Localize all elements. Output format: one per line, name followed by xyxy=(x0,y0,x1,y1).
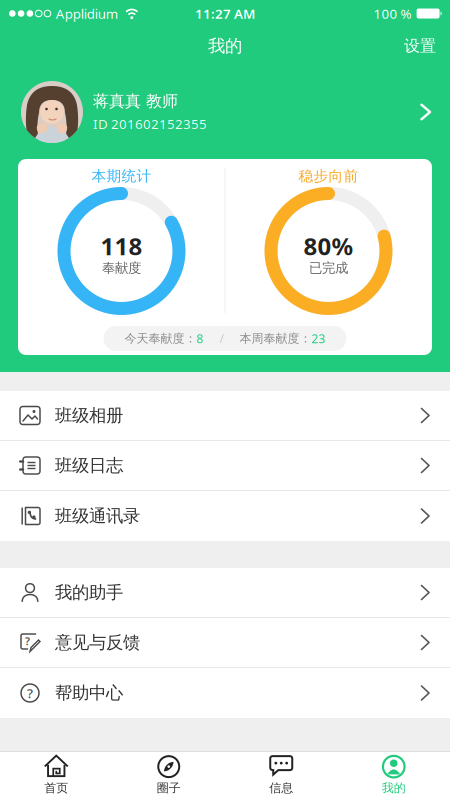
staticText: 圈子 xyxy=(157,781,181,795)
staticText: 稳步向前 xyxy=(298,167,358,185)
staticText: 班级通讯录 xyxy=(55,505,140,527)
staticText: ? xyxy=(25,634,30,648)
button[interactable]: 蒋真真 教师 xyxy=(0,81,450,143)
staticText: 我的助手 xyxy=(55,582,123,603)
button[interactable]: 信息 xyxy=(225,752,337,800)
button[interactable]: ? xyxy=(0,668,450,718)
staticText: 班级日志 xyxy=(55,455,123,476)
staticText: 意见与反馈 xyxy=(55,632,140,653)
staticText: 班级相册 xyxy=(55,405,123,426)
button[interactable]: 班级相册 xyxy=(0,391,450,440)
staticText: ID 201602152355 xyxy=(93,115,207,133)
staticText: 首页 xyxy=(44,781,68,795)
button[interactable]: ? xyxy=(0,618,450,667)
button[interactable]: 我的助手 xyxy=(0,568,450,617)
staticText: 信息 xyxy=(269,781,293,795)
button[interactable]: 首页 xyxy=(0,752,112,800)
staticText: 设置 xyxy=(404,36,436,56)
staticText: 蒋真真 教师 xyxy=(93,91,178,111)
staticText: 118 xyxy=(100,230,142,262)
button[interactable]: 我的 xyxy=(337,752,450,800)
staticText: 已完成 xyxy=(309,260,348,276)
staticText: 我的 xyxy=(382,781,406,795)
staticText: 奉献度 xyxy=(102,260,141,276)
staticText: 80% xyxy=(303,230,353,262)
staticText: 本周奉献度： xyxy=(239,331,311,346)
button[interactable]: 班级日志 xyxy=(0,441,450,490)
staticText: Applidium xyxy=(56,5,118,22)
staticText: / xyxy=(219,330,223,346)
staticText: 100 % xyxy=(374,5,412,22)
staticText: 本期统计 xyxy=(91,167,151,185)
staticText: 11:27 AM xyxy=(195,5,255,22)
button[interactable]: 设置 xyxy=(404,36,450,56)
button[interactable]: 圈子 xyxy=(112,752,225,800)
staticText: 今天奉献度： xyxy=(124,331,196,346)
staticText: ? xyxy=(27,684,33,702)
staticText: 23 xyxy=(311,330,325,346)
staticText: 我的 xyxy=(208,35,242,57)
button[interactable]: 班级通讯录 xyxy=(0,491,450,541)
staticText: 8 xyxy=(196,330,203,346)
staticText: 帮助中心 xyxy=(55,682,123,704)
